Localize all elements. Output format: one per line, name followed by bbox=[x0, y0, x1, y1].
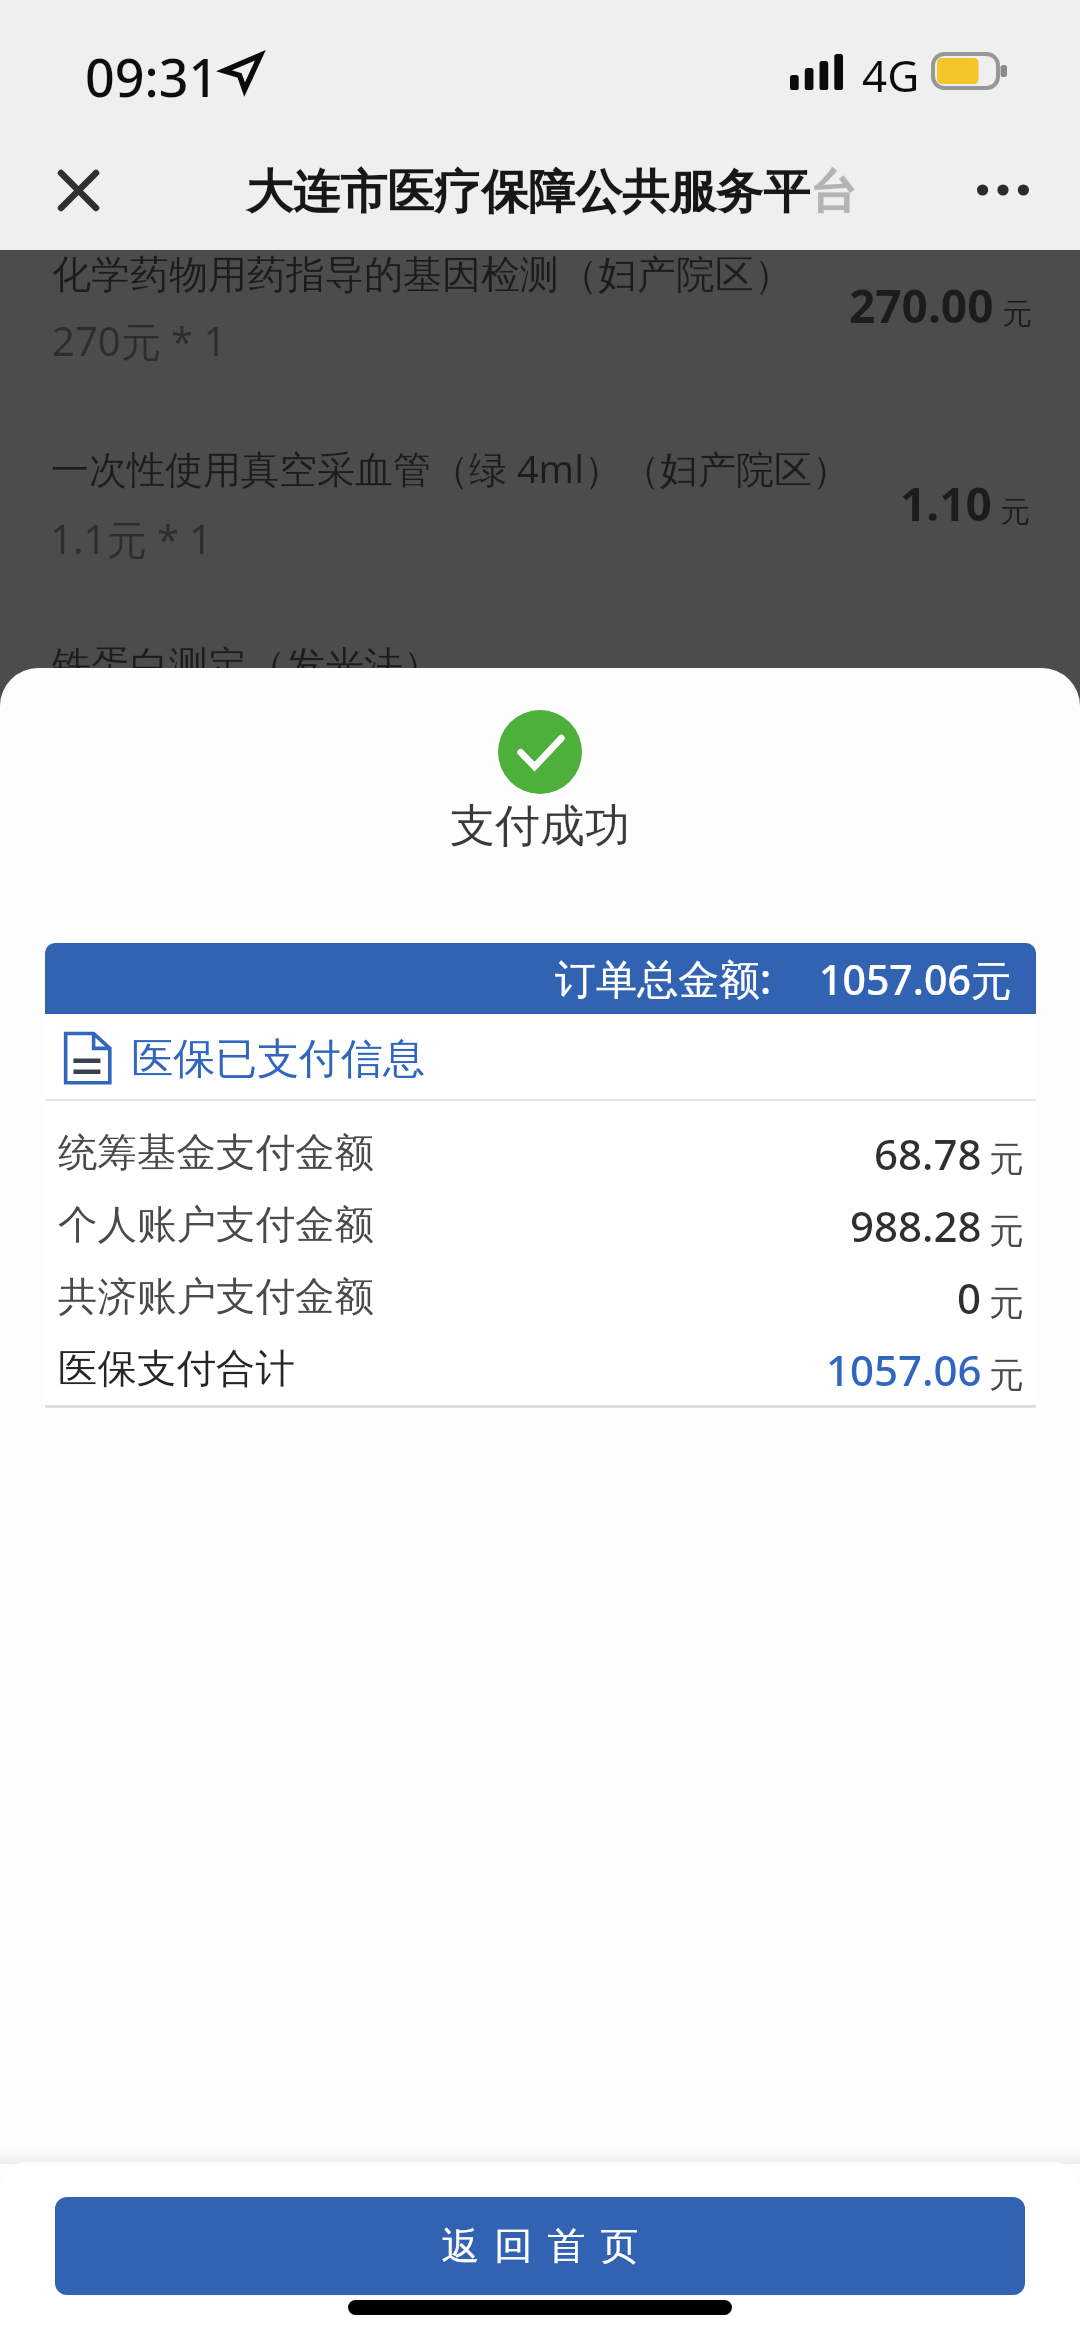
staticText: 一次性使用真空采血管（绿 4ml）（妇产院区） bbox=[51, 442, 850, 494]
staticText: 共济账户支付金额 bbox=[58, 1272, 374, 1322]
button[interactable]: Close bbox=[30, 142, 126, 238]
staticText: 元 bbox=[1002, 295, 1032, 333]
staticText: 医保已支付信息 bbox=[131, 1033, 425, 1086]
staticText: 1.10 bbox=[900, 472, 992, 535]
staticText: 医保支付合计 bbox=[58, 1344, 295, 1394]
staticText: 元 bbox=[1000, 493, 1030, 531]
staticText: 0 bbox=[957, 1269, 982, 1326]
staticText: 270元 * 1 bbox=[52, 313, 227, 368]
staticText: 1057.06 bbox=[826, 1341, 982, 1398]
button[interactable]: More options bbox=[955, 142, 1051, 238]
staticText: 68.78 bbox=[874, 1125, 982, 1182]
staticText: 270.00 bbox=[849, 274, 994, 337]
button[interactable]: 返回首页 bbox=[55, 2197, 1025, 2295]
staticText: 大连市医疗保障公共服务平台 bbox=[246, 163, 857, 222]
staticText: 订单总金额: bbox=[555, 950, 772, 1006]
staticText: 1057.06元 bbox=[819, 951, 1012, 1007]
staticText: 元 bbox=[989, 1137, 1024, 1181]
staticText: 化学药物用药指导的基因检测（妇产院区） bbox=[52, 250, 793, 299]
staticText: 返回首页 bbox=[434, 2222, 646, 2270]
staticText: 统筹基金支付金额 bbox=[58, 1128, 374, 1178]
staticText: 09:31 bbox=[85, 41, 219, 112]
staticText: 988.28 bbox=[850, 1197, 982, 1254]
staticText: 铁蛋白测定（发光法） bbox=[52, 641, 442, 690]
staticText: 支付成功 bbox=[450, 798, 630, 855]
staticText: 个人账户支付金额 bbox=[58, 1200, 374, 1250]
staticText: 4G bbox=[862, 45, 920, 105]
staticText: 元 bbox=[989, 1353, 1024, 1397]
staticText: 元 bbox=[989, 1281, 1024, 1325]
staticText: 元 bbox=[989, 1209, 1024, 1253]
staticText: 1.1元 * 1 bbox=[50, 511, 213, 566]
